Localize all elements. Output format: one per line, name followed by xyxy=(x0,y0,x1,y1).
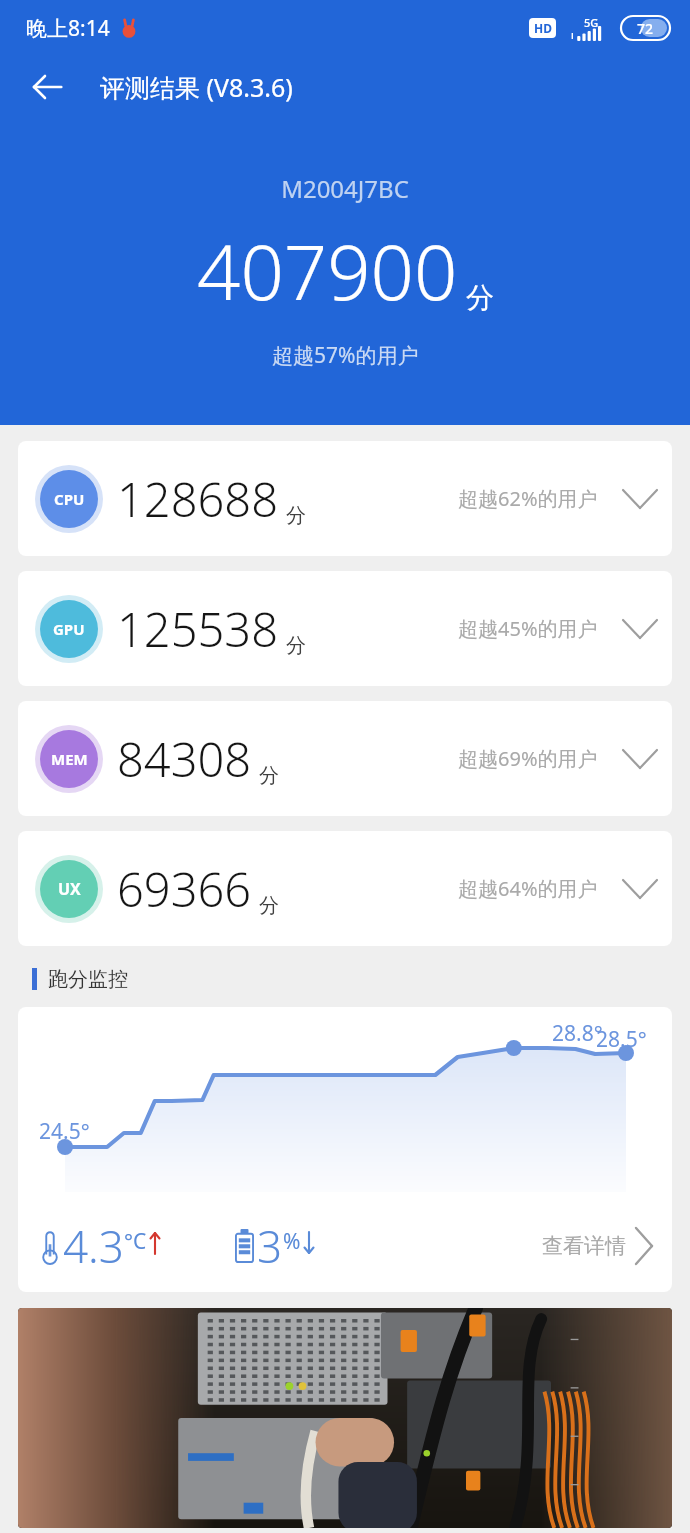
staticText: 超越64%的用户 xyxy=(458,875,598,902)
other: Expand CPU details xyxy=(620,479,660,519)
other: Expand GPU details xyxy=(620,609,660,649)
staticText: 超越45%的用户 xyxy=(458,615,598,642)
other: Expand MEM details xyxy=(620,739,660,779)
staticText: GPU xyxy=(53,619,85,639)
button[interactable]: CPU xyxy=(18,441,672,556)
button[interactable]: MEM xyxy=(18,701,672,816)
staticText: 28.8° xyxy=(552,1019,603,1048)
staticText: 跑分监控 xyxy=(48,967,128,992)
staticText: 分 xyxy=(286,633,306,658)
staticText: 3 xyxy=(257,1216,283,1276)
staticText: 分 xyxy=(466,280,494,315)
staticText: 24.5° xyxy=(39,1117,90,1146)
button[interactable]: Article image xyxy=(18,1308,672,1528)
staticText: 评测结果 (V8.3.6) xyxy=(100,70,293,104)
staticText: 28.5° xyxy=(596,1025,647,1054)
staticText: 查看详情 xyxy=(542,1233,626,1259)
other: Expand UX details xyxy=(620,869,660,909)
staticText: MEM xyxy=(51,749,88,769)
staticText: % xyxy=(283,1227,301,1256)
button[interactable]: UX xyxy=(18,831,672,946)
staticText: M2004J7BC xyxy=(281,172,409,205)
staticText: 5G xyxy=(584,15,599,30)
staticText: 407900 xyxy=(197,219,458,323)
staticText: 72 xyxy=(637,19,654,38)
staticText: 超越62%的用户 xyxy=(458,485,598,512)
staticText: 超越69%的用户 xyxy=(458,745,598,772)
button[interactable]: 查看详情 xyxy=(542,1228,654,1264)
staticText: CPU xyxy=(54,489,85,509)
button[interactable]: Back xyxy=(22,61,74,113)
staticText: 128688 xyxy=(117,467,279,531)
staticText: 4.3 xyxy=(63,1216,124,1276)
staticText: 超越57%的用户 xyxy=(272,341,419,370)
staticText: °C xyxy=(124,1227,147,1256)
staticText: 84308 xyxy=(117,727,252,791)
button[interactable]: GPU xyxy=(18,571,672,686)
staticText: 69366 xyxy=(117,857,252,921)
staticText: 分 xyxy=(259,763,279,788)
staticText: 125538 xyxy=(117,597,279,661)
staticText: 晚上8:14 xyxy=(26,14,110,43)
staticText: UX xyxy=(58,878,81,900)
staticText: 分 xyxy=(286,503,306,528)
staticText: HD xyxy=(534,20,552,36)
staticText: 分 xyxy=(259,893,279,918)
